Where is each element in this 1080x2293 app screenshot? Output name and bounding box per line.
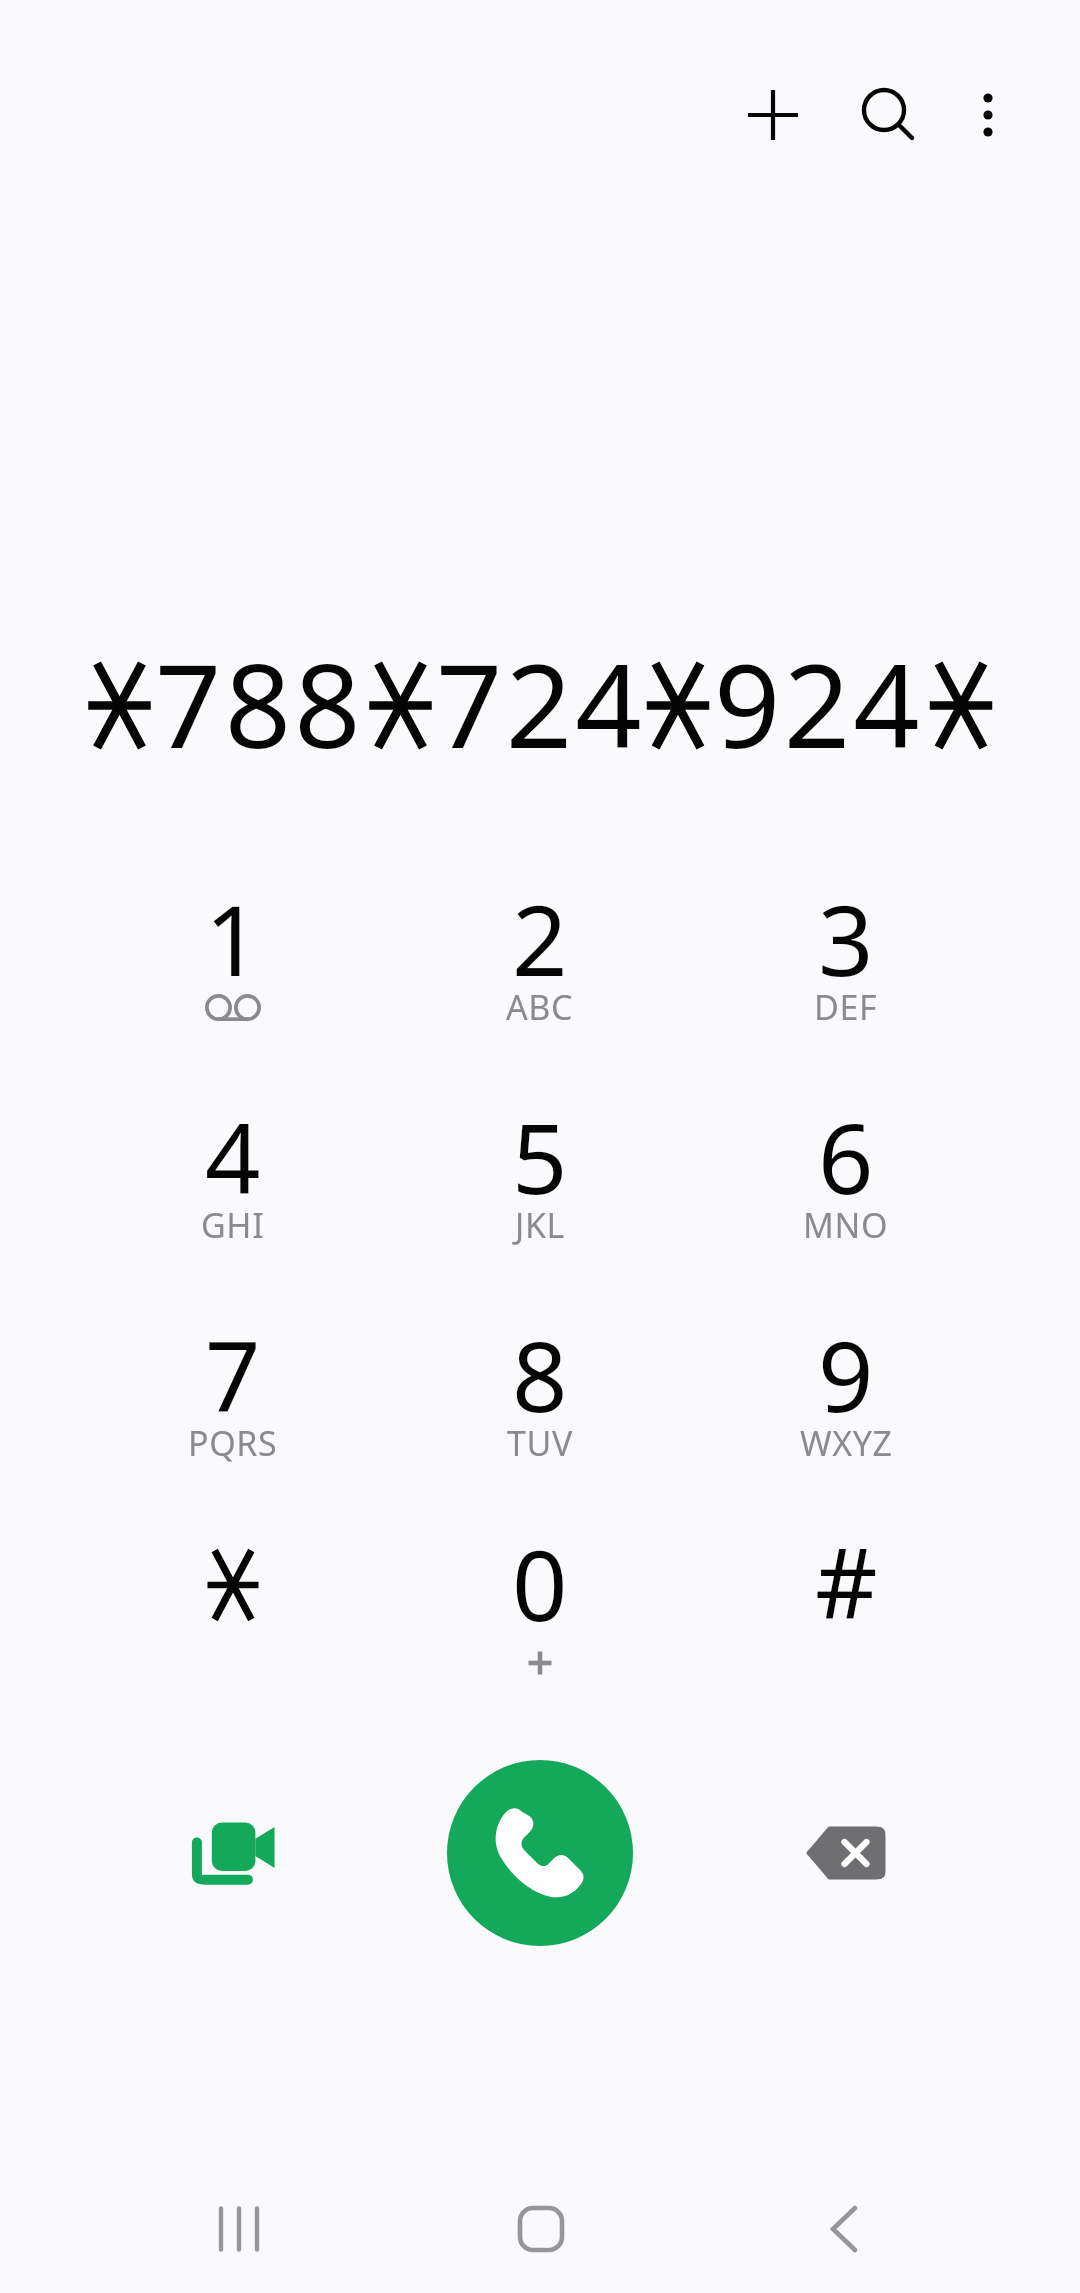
button[interactable]: Home	[481, 2169, 601, 2289]
staticText: 7	[205, 1308, 261, 1440]
button[interactable]: 0	[390, 1491, 690, 1691]
staticText: 5	[512, 1090, 568, 1222]
staticText: 1	[205, 872, 261, 1004]
button[interactable]: 5	[390, 1064, 690, 1264]
staticText: GHI	[201, 1202, 265, 1248]
staticText: MNO	[803, 1202, 889, 1248]
button[interactable]: #	[696, 1491, 996, 1691]
button[interactable]: Dialled number *788*724*924*	[0, 600, 1080, 800]
button[interactable]: Recents	[179, 2169, 299, 2289]
button[interactable]: More options	[938, 65, 1038, 165]
button[interactable]: 6	[696, 1064, 996, 1264]
button[interactable]: Add contact	[723, 65, 823, 165]
staticText: 724	[436, 624, 645, 782]
staticText: 3	[818, 872, 874, 1004]
staticText: PQRS	[188, 1420, 278, 1466]
button[interactable]: 7	[83, 1282, 383, 1482]
staticText: DEF	[814, 984, 878, 1030]
staticText: 9	[818, 1308, 874, 1440]
button[interactable]: Call	[447, 1760, 633, 1946]
button[interactable]: Star	[83, 1491, 383, 1691]
button[interactable]: 9	[696, 1282, 996, 1482]
staticText: ABC	[506, 984, 574, 1030]
staticText: 4	[205, 1090, 261, 1222]
staticText: TUV	[507, 1420, 573, 1466]
button[interactable]: 4	[83, 1064, 383, 1264]
staticText: 0	[512, 1517, 568, 1649]
staticText: 788	[155, 624, 364, 782]
staticText: 924	[714, 624, 923, 782]
button[interactable]: 2	[390, 846, 690, 1046]
staticText: 6	[818, 1090, 874, 1222]
button[interactable]: 1	[83, 846, 383, 1046]
staticText: #	[815, 1514, 878, 1646]
button[interactable]: Video call	[158, 1778, 308, 1928]
staticText: WXYZ	[800, 1420, 893, 1466]
button[interactable]: Search	[834, 64, 934, 164]
staticText: 8	[512, 1308, 568, 1440]
button[interactable]: Backspace	[771, 1778, 921, 1928]
button[interactable]: 3	[696, 846, 996, 1046]
button[interactable]: 8	[390, 1282, 690, 1482]
button[interactable]: Back	[784, 2169, 904, 2289]
staticText: 2	[512, 872, 568, 1004]
staticText: JKL	[515, 1202, 565, 1248]
